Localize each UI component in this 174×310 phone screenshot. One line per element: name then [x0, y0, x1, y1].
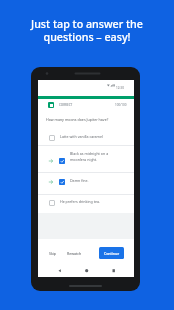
staticText: Black as midnight on a moonless night.	[70, 151, 109, 163]
button[interactable]: He prefers drinking tea.	[38, 195, 134, 213]
button[interactable]: Damn fine.	[38, 173, 134, 194]
button[interactable]: Continue	[99, 247, 124, 259]
staticText: 100/100	[115, 103, 127, 107]
staticText: Skip	[49, 251, 56, 256]
staticText: CORRECT	[59, 103, 73, 107]
staticText: How many moons does Jupiter have?	[46, 117, 109, 122]
staticText: Latte with vanilla caramel	[60, 134, 103, 139]
staticText: Just tap to answer the questions – easy!	[31, 17, 143, 44]
staticText: He prefers drinking tea.	[60, 199, 101, 204]
button[interactable]: Black as midnight on a moonless night.	[38, 146, 134, 172]
button[interactable]: Back	[53, 264, 66, 277]
button[interactable]: Rewatch	[66, 249, 83, 258]
button[interactable]: Skip	[48, 249, 57, 258]
staticText: Rewatch	[67, 251, 82, 256]
button[interactable]: Latte with vanilla caramel	[38, 128, 134, 145]
staticText: Damn fine.	[70, 178, 89, 183]
staticText: Continue	[104, 251, 120, 256]
staticText: 12:30	[116, 86, 124, 90]
button[interactable]: Home	[80, 264, 93, 277]
button[interactable]: Recents	[107, 264, 120, 277]
